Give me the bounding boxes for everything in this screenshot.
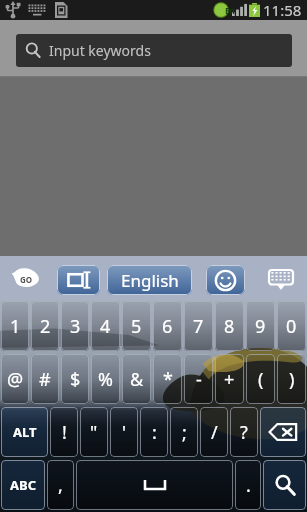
button[interactable]: $ xyxy=(61,354,89,404)
staticText: 4 xyxy=(100,314,111,339)
button[interactable]: 7 xyxy=(184,301,213,351)
button[interactable]: ) xyxy=(277,354,306,404)
button[interactable]: Search xyxy=(263,460,306,510)
staticText: GO xyxy=(20,274,33,285)
staticText: ! xyxy=(62,420,67,445)
staticText: 0 xyxy=(286,314,297,339)
staticText: 1 xyxy=(10,314,21,339)
button[interactable]: & xyxy=(122,354,151,404)
button[interactable]: 9 xyxy=(246,301,275,351)
button[interactable]: # xyxy=(31,354,59,404)
button[interactable]: + xyxy=(215,354,244,404)
button[interactable]: ' xyxy=(110,407,138,457)
button[interactable]: ALT xyxy=(1,407,48,457)
button[interactable]: Space xyxy=(76,460,233,510)
staticText: ; xyxy=(182,420,187,445)
staticText: * xyxy=(163,367,173,392)
staticText: " xyxy=(90,420,98,445)
staticText: Input keywords xyxy=(49,41,151,60)
button[interactable]: % xyxy=(91,354,120,404)
staticText: English xyxy=(121,269,179,292)
button[interactable]: / xyxy=(200,407,228,457)
button[interactable]: 4 xyxy=(91,301,120,351)
button[interactable]: " xyxy=(80,407,108,457)
button[interactable]: 6 xyxy=(153,301,182,351)
button[interactable]: Input keywords xyxy=(16,34,292,67)
staticText: 7 xyxy=(193,314,204,339)
button[interactable]: . xyxy=(235,460,261,510)
button[interactable]: ? xyxy=(230,407,258,457)
staticText: 6 xyxy=(162,314,173,339)
button[interactable]: ABC xyxy=(1,460,45,510)
button[interactable]: : xyxy=(140,407,168,457)
staticText: & xyxy=(130,367,144,392)
button[interactable]: 0 xyxy=(277,301,306,351)
button[interactable]: GO Keyboard menu xyxy=(6,263,46,293)
button[interactable]: Emoji xyxy=(206,265,245,295)
staticText: 3 xyxy=(70,314,81,339)
button[interactable]: * xyxy=(153,354,182,404)
button[interactable]: 5 xyxy=(122,301,151,351)
staticText: @ xyxy=(7,367,24,392)
button[interactable]: ( xyxy=(246,354,275,404)
staticText: % xyxy=(98,367,113,392)
staticText: En xyxy=(225,5,235,16)
staticText: ALT xyxy=(13,423,37,441)
staticText: , xyxy=(58,473,63,498)
staticText: ( xyxy=(258,367,264,392)
button[interactable]: Delete xyxy=(260,407,306,457)
staticText: 11:58 xyxy=(263,0,302,20)
button[interactable]: Keyboard layout xyxy=(57,265,100,295)
button[interactable]: - xyxy=(184,354,213,404)
staticText: : xyxy=(152,420,157,445)
staticText: - xyxy=(196,367,202,392)
staticText: ABC xyxy=(10,476,36,494)
staticText: ' xyxy=(122,420,127,445)
staticText: 8 xyxy=(224,314,235,339)
staticText: / xyxy=(211,420,218,445)
staticText: 2 xyxy=(40,314,51,339)
staticText: + xyxy=(224,367,235,392)
button[interactable]: 2 xyxy=(31,301,59,351)
button[interactable]: @ xyxy=(1,354,29,404)
button[interactable]: 8 xyxy=(215,301,244,351)
button[interactable]: 3 xyxy=(61,301,89,351)
staticText: ) xyxy=(289,367,295,392)
staticText: ? xyxy=(240,420,248,445)
staticText: $ xyxy=(70,367,81,392)
button[interactable]: ! xyxy=(50,407,78,457)
staticText: 9 xyxy=(255,314,266,339)
button[interactable]: ; xyxy=(170,407,198,457)
button[interactable]: Hide keyboard xyxy=(260,265,302,295)
staticText: 5 xyxy=(131,314,142,339)
button[interactable]: , xyxy=(47,460,74,510)
staticText: . xyxy=(246,473,251,498)
button[interactable]: 1 xyxy=(1,301,29,351)
staticText: # xyxy=(39,367,51,392)
button[interactable]: English xyxy=(107,265,192,295)
